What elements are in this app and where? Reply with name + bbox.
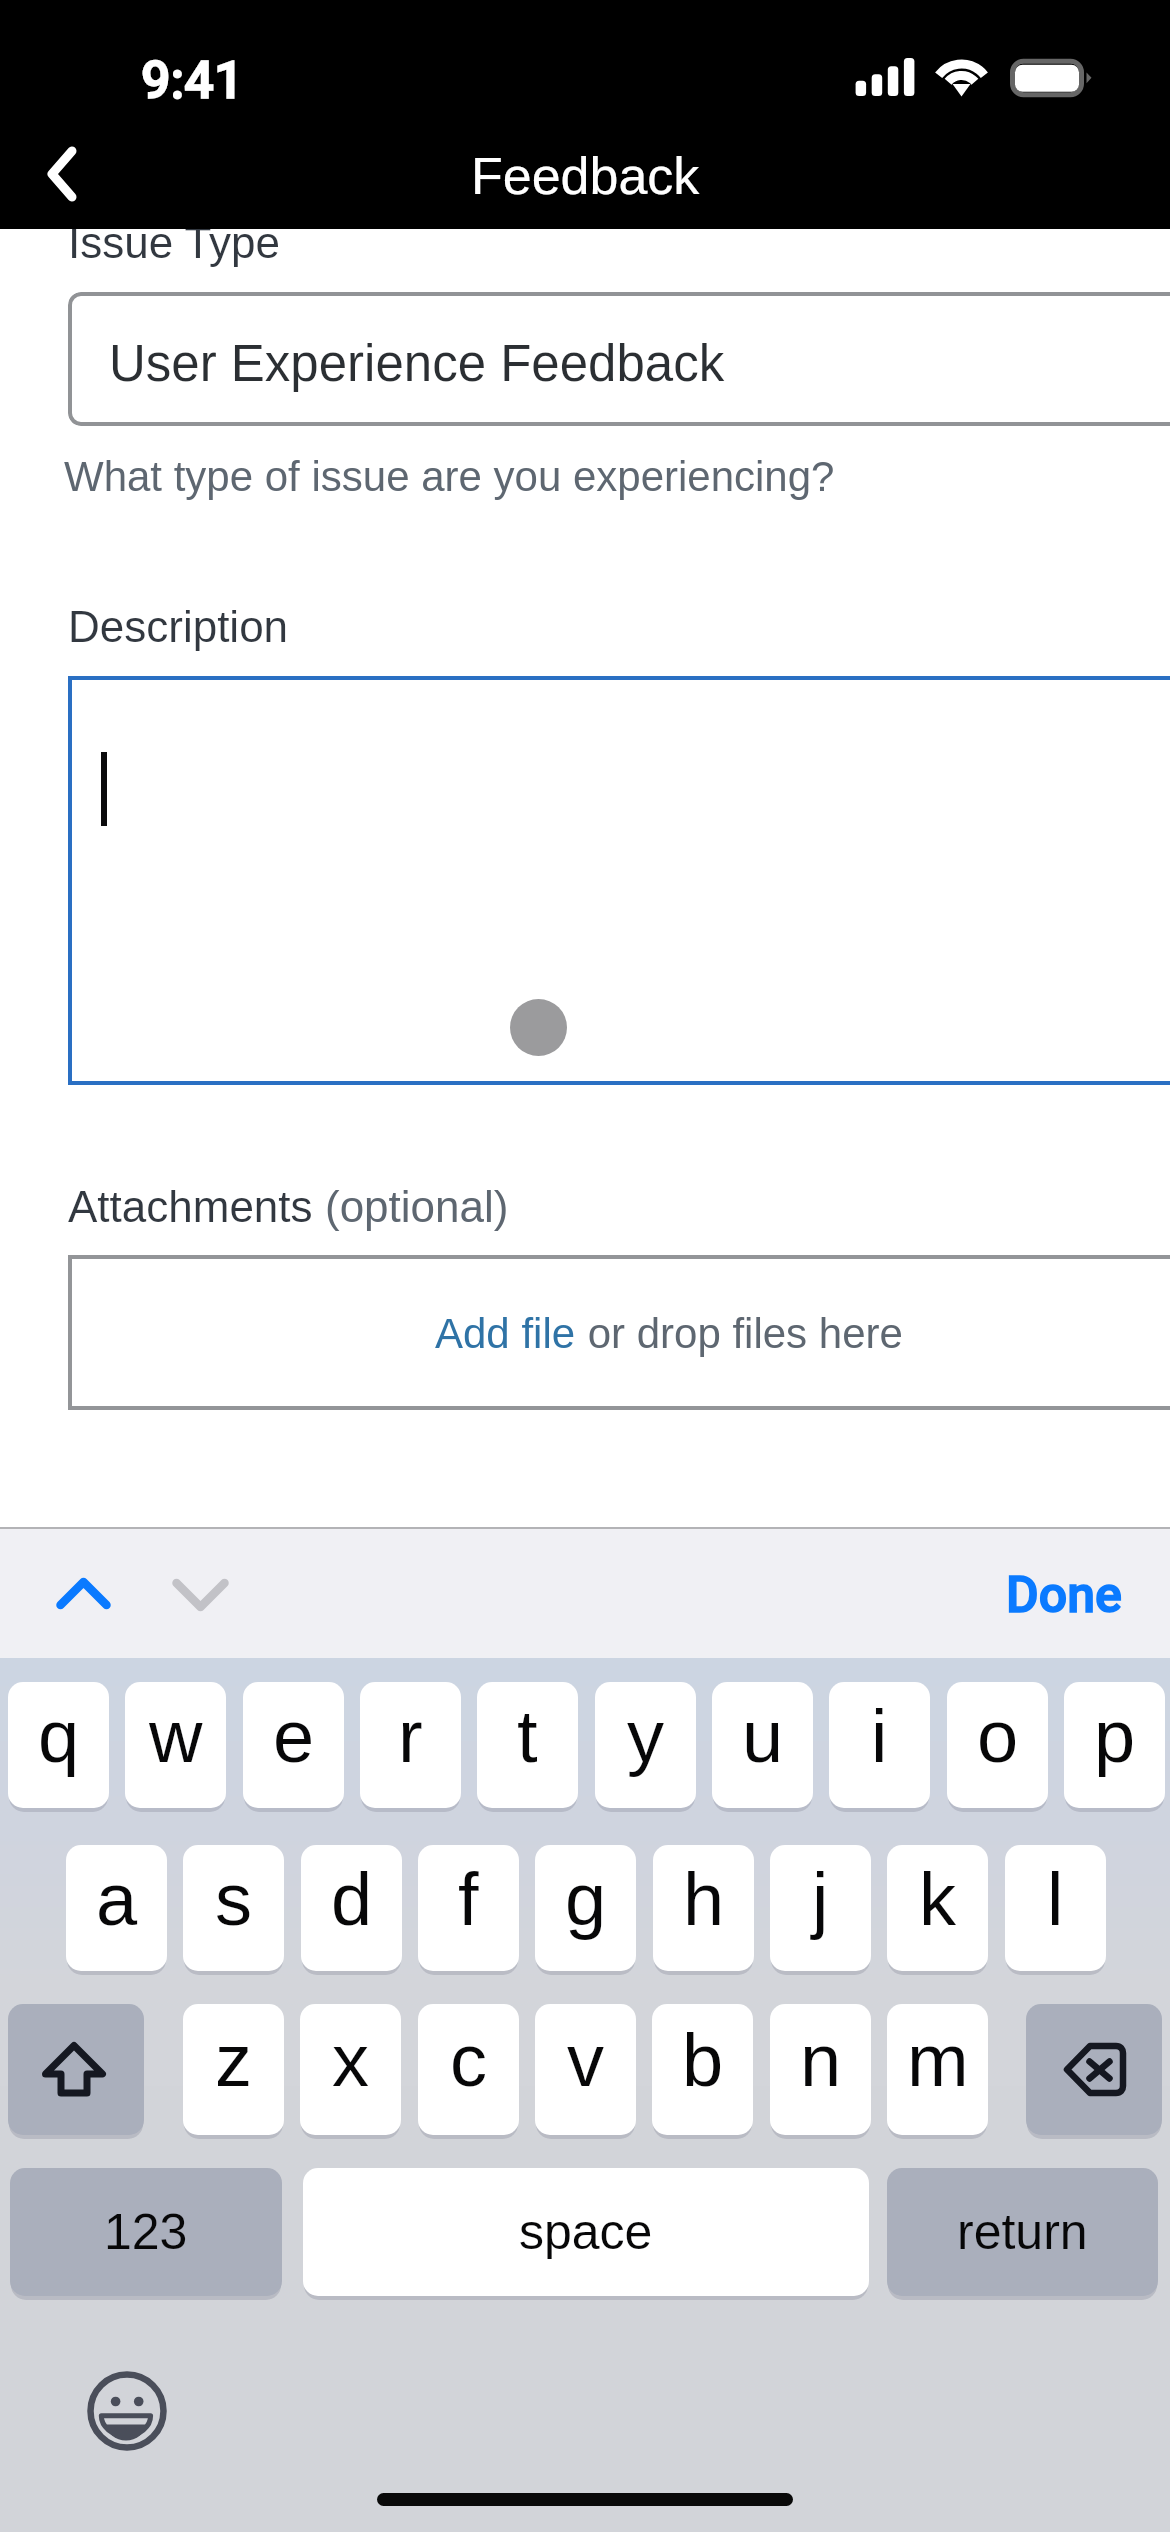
button[interactable]: q bbox=[8, 1682, 109, 1808]
button[interactable]: j bbox=[770, 1845, 871, 1971]
staticText: n bbox=[800, 2019, 842, 2102]
staticText: z bbox=[215, 2019, 252, 2102]
staticText: g bbox=[565, 1858, 607, 1941]
button[interactable]: y bbox=[595, 1682, 696, 1808]
button[interactable]: Add file bbox=[68, 1255, 1170, 1410]
button[interactable]: h bbox=[653, 1845, 754, 1971]
staticText: o bbox=[977, 1695, 1019, 1778]
staticText: d bbox=[331, 1858, 373, 1941]
button[interactable]: u bbox=[712, 1682, 813, 1808]
button[interactable]: 123 bbox=[10, 2168, 282, 2296]
staticText: Add file bbox=[435, 1310, 576, 1357]
staticText: t bbox=[517, 1695, 538, 1778]
button[interactable]: Previous field bbox=[38, 1555, 132, 1629]
staticText: What type of issue are you experiencing? bbox=[64, 453, 835, 500]
staticText: j bbox=[812, 1858, 829, 1941]
button[interactable]: Next field bbox=[158, 1555, 252, 1629]
button[interactable]: Done bbox=[1006, 1563, 1122, 1622]
staticText: l bbox=[1047, 1858, 1064, 1941]
staticText: w bbox=[149, 1695, 203, 1778]
button[interactable]: t bbox=[477, 1682, 578, 1808]
staticText: r bbox=[398, 1695, 423, 1778]
staticText: v bbox=[567, 2019, 604, 2102]
button[interactable]: g bbox=[535, 1845, 636, 1971]
button[interactable]: d bbox=[301, 1845, 402, 1971]
button[interactable]: space bbox=[303, 2168, 869, 2296]
staticText: y bbox=[627, 1695, 664, 1778]
button[interactable]: e bbox=[243, 1682, 344, 1808]
button[interactable]: m bbox=[887, 2004, 988, 2135]
staticText: c bbox=[450, 2019, 487, 2102]
staticText: e bbox=[273, 1695, 315, 1778]
staticText: Attachments bbox=[68, 1182, 325, 1231]
button[interactable]: b bbox=[652, 2004, 753, 2135]
button[interactable]: f bbox=[418, 1845, 519, 1971]
staticText: User Experience Feedback bbox=[109, 335, 725, 392]
button[interactable]: c bbox=[418, 2004, 519, 2135]
button[interactable]: r bbox=[360, 1682, 461, 1808]
staticText: a bbox=[96, 1858, 138, 1941]
staticText: Feedback bbox=[471, 147, 700, 205]
staticText: u bbox=[742, 1695, 784, 1778]
staticText: 123 bbox=[104, 2204, 188, 2260]
button[interactable]: Emoji keyboard bbox=[86, 2370, 168, 2452]
staticText: i bbox=[871, 1695, 888, 1778]
button[interactable]: k bbox=[887, 1845, 988, 1971]
staticText: f bbox=[458, 1858, 479, 1941]
button[interactable]: n bbox=[770, 2004, 871, 2135]
button[interactable]: Shift bbox=[8, 2004, 144, 2135]
button[interactable]: User Experience Feedback bbox=[68, 292, 1170, 426]
button[interactable]: Backspace bbox=[1026, 2004, 1162, 2135]
staticText: x bbox=[332, 2019, 369, 2102]
staticText: Issue Type bbox=[68, 218, 280, 267]
button[interactable]: l bbox=[1005, 1845, 1106, 1971]
button[interactable]: v bbox=[535, 2004, 636, 2135]
button[interactable]: w bbox=[125, 1682, 226, 1808]
staticText: or drop files here bbox=[576, 1310, 903, 1357]
button[interactable]: z bbox=[183, 2004, 284, 2135]
button[interactable]: a bbox=[66, 1845, 167, 1971]
staticText: m bbox=[907, 2019, 969, 2102]
staticText: s bbox=[215, 1858, 252, 1941]
staticText: q bbox=[38, 1695, 80, 1778]
button[interactable] bbox=[68, 676, 1170, 1085]
staticText: Description bbox=[68, 602, 289, 651]
staticText: Done bbox=[1006, 1566, 1122, 1625]
staticText: return bbox=[957, 2204, 1088, 2260]
staticText: k bbox=[919, 1858, 956, 1941]
button[interactable]: s bbox=[183, 1845, 284, 1971]
button[interactable]: return bbox=[887, 2168, 1158, 2296]
staticText: b bbox=[682, 2019, 724, 2102]
button[interactable]: o bbox=[947, 1682, 1048, 1808]
staticText: space bbox=[519, 2204, 653, 2260]
button[interactable]: i bbox=[829, 1682, 930, 1808]
button[interactable]: Back bbox=[22, 132, 108, 218]
button[interactable]: x bbox=[300, 2004, 401, 2135]
staticText: h bbox=[683, 1858, 725, 1941]
staticText: 9:41 bbox=[141, 50, 244, 111]
staticText: (optional) bbox=[325, 1182, 509, 1231]
button[interactable]: p bbox=[1064, 1682, 1165, 1808]
staticText: p bbox=[1094, 1695, 1136, 1778]
